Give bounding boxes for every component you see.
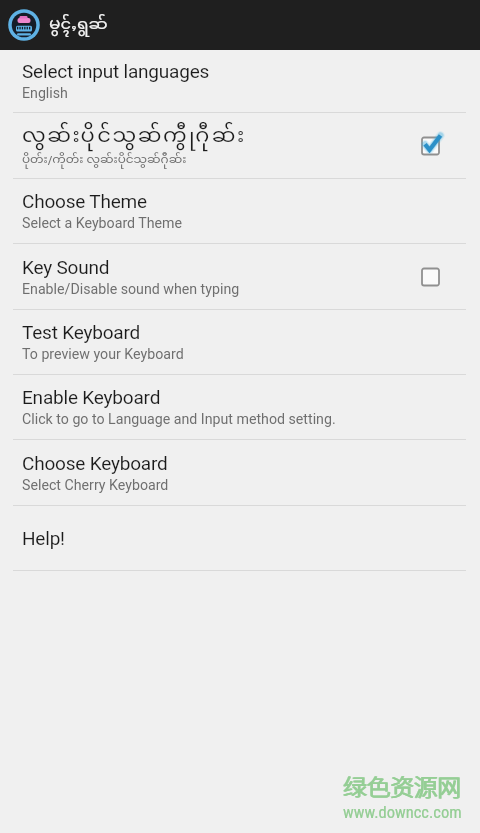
staticText: Choose Theme (22, 190, 147, 212)
staticText: Key Sound (22, 256, 110, 278)
staticText: Click to go to Language and Input method… (22, 411, 336, 428)
button[interactable]: Test Keyboard (0, 310, 480, 374)
staticText: 绿色资源网 (344, 769, 462, 803)
staticText: Test Keyboard (22, 321, 141, 343)
staticText: Select a Keyboard Theme (22, 215, 183, 232)
button[interactable]: Key Sound (0, 244, 480, 309)
button[interactable]: Help! (0, 506, 480, 570)
staticText: 绿色资源网 (343, 769, 461, 803)
staticText: Select Cherry Keyboard (22, 477, 169, 494)
button[interactable]: မွၚ်ႇရွဆ် (0, 0, 480, 50)
staticText: www.downcc.com (343, 803, 462, 822)
staticText: Enable Keyboard (22, 386, 161, 408)
button[interactable]: Select input languages (0, 50, 480, 112)
staticText: To preview your Keyboard (22, 346, 184, 363)
button[interactable]: လွဆ်းပိုင်သွဆ်ကွီုဂီုဆ်း (0, 113, 480, 178)
staticText: English (22, 85, 68, 102)
button[interactable]: Enable Keyboard (0, 375, 480, 439)
staticText: Select input languages (22, 60, 210, 82)
staticText: လွဆ်းပိုင်သွဆ်ကွီုဂီုဆ်း (22, 123, 246, 152)
button[interactable]: Choose Theme (0, 179, 480, 243)
staticText: ပိုတ်း/ကိုတ်း လွဆ်းပိုင်သွဆ်ဂီုဆ်း (22, 152, 187, 168)
staticText: မွၚ်ႇရွဆ် (49, 14, 108, 37)
staticText: Choose Keyboard (22, 452, 168, 474)
button[interactable]: Choose Keyboard (0, 440, 480, 505)
staticText: Help! (22, 527, 65, 549)
staticText: Enable/Disable sound when typing (22, 281, 240, 298)
